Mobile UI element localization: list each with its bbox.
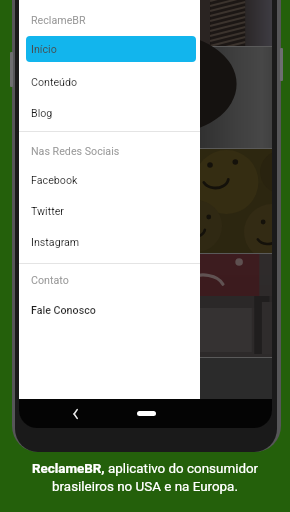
- staticText: Facebook: [31, 174, 78, 187]
- button[interactable]: Instagram: [19, 227, 200, 257]
- button[interactable]: Home: [137, 411, 156, 416]
- staticText: Contato: [31, 274, 69, 287]
- staticText: Instagram: [31, 236, 80, 249]
- button[interactable]: Conteúdo: [19, 67, 200, 97]
- staticText: Nas Redes Sociais: [31, 145, 120, 158]
- staticText: ReclameBR: [31, 14, 86, 27]
- button[interactable]: Back: [63, 402, 87, 426]
- button[interactable]: Blog: [19, 98, 200, 128]
- button[interactable]: Facebook: [19, 165, 200, 195]
- staticText: Twitter: [31, 205, 64, 218]
- button[interactable]: Twitter: [19, 196, 200, 226]
- staticText: ReclameBR, aplicativo do consumidor bras…: [18, 461, 272, 494]
- button[interactable]: [26, 36, 196, 62]
- staticText: Conteúdo: [31, 76, 78, 89]
- button[interactable]: Fale Conosco: [19, 295, 200, 325]
- staticText: Blog: [31, 107, 53, 120]
- staticText: Fale Conosco: [31, 304, 96, 317]
- staticText: Início: [31, 43, 57, 56]
